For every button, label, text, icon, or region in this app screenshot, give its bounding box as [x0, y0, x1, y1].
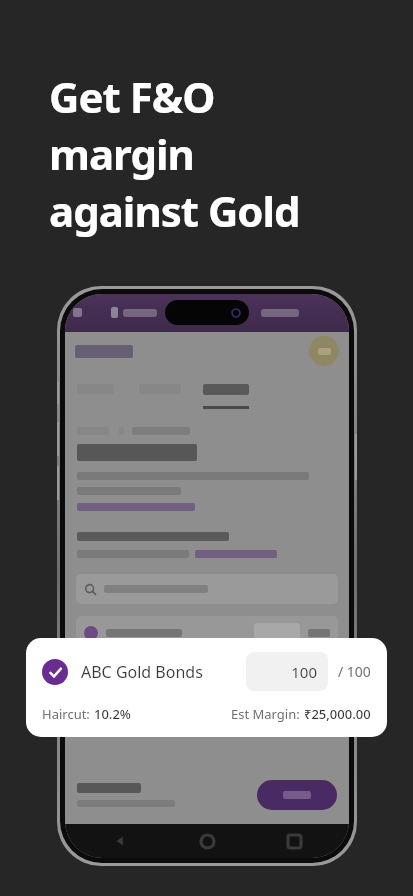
button[interactable]	[257, 780, 337, 810]
button[interactable]	[76, 574, 338, 604]
button[interactable]: Selected	[26, 638, 387, 737]
staticText: margin	[49, 125, 194, 182]
button[interactable]: Selected	[42, 659, 68, 685]
button[interactable]	[76, 696, 338, 730]
staticText: 10.2%	[94, 705, 131, 723]
staticText: Est Margin:	[231, 705, 304, 723]
staticText: / 100	[338, 662, 371, 681]
staticText: ABC Gold Bonds	[81, 661, 203, 683]
staticText: Get F&O	[49, 68, 215, 125]
button[interactable]: Recents	[288, 835, 301, 848]
staticText: ₹25,000.00	[304, 705, 371, 723]
staticText: against Gold	[49, 182, 300, 239]
button[interactable]	[76, 656, 338, 690]
button[interactable]: 100	[246, 652, 328, 691]
staticText: 100	[291, 662, 317, 682]
button[interactable]	[76, 616, 338, 650]
button[interactable]: Home	[201, 835, 214, 848]
button[interactable]: Back	[113, 834, 127, 848]
staticText: Haircut:	[42, 705, 94, 723]
